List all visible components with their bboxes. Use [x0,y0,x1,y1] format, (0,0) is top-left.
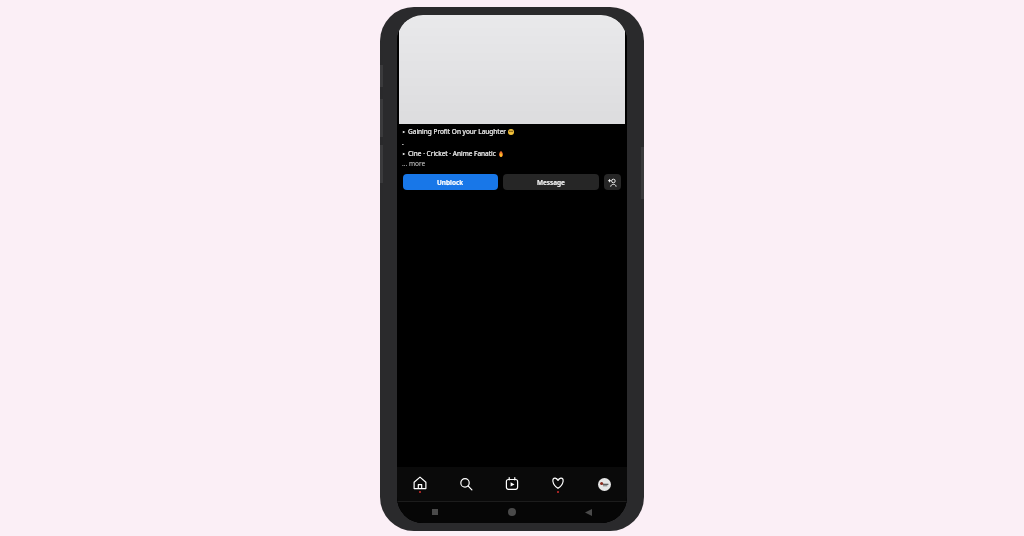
staticText: . [402,138,404,147]
button[interactable]: Home [397,467,443,501]
staticText: ... more [402,159,426,168]
button[interactable]: Activity [535,467,581,501]
button[interactable]: Profile [581,467,627,501]
staticText: Unblock [437,178,464,187]
staticText: 5:21 🌙 [406,18,427,26]
button[interactable]: Add person [604,174,621,190]
button[interactable]: Reels [489,467,535,501]
button[interactable]: Message [503,174,599,190]
staticText: Cine · Cricket · Anime Fanatic [408,149,498,158]
staticText: Gaining Profit On your Laughter [408,127,508,136]
button[interactable]: Unblock [403,174,498,190]
button[interactable]: Search [443,467,489,501]
button[interactable]: ... more [402,159,426,168]
staticText: Message [537,178,565,187]
